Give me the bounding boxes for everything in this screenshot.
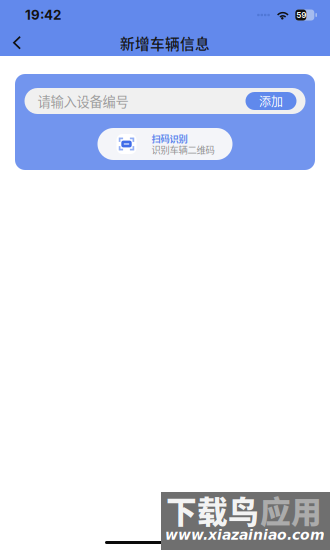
staticText: 扫码识别 xyxy=(151,132,187,145)
staticText: 添加 xyxy=(259,92,283,110)
staticText: www.xiazainiao.com xyxy=(165,527,325,543)
staticText: 19:42 xyxy=(25,7,61,23)
staticText: 识别车辆二维码 xyxy=(151,143,214,156)
staticText: 应用 xyxy=(260,488,322,532)
staticText: 59 xyxy=(296,10,306,20)
button[interactable]: 添加 xyxy=(245,92,296,110)
staticText: 新增车辆信息 xyxy=(120,32,210,54)
button[interactable]: 扫码识别 xyxy=(97,128,232,160)
button[interactable]: 返回 xyxy=(0,28,34,58)
staticText: 请输入设备编号 xyxy=(37,91,128,111)
staticText: 下载鸟 xyxy=(166,488,259,532)
